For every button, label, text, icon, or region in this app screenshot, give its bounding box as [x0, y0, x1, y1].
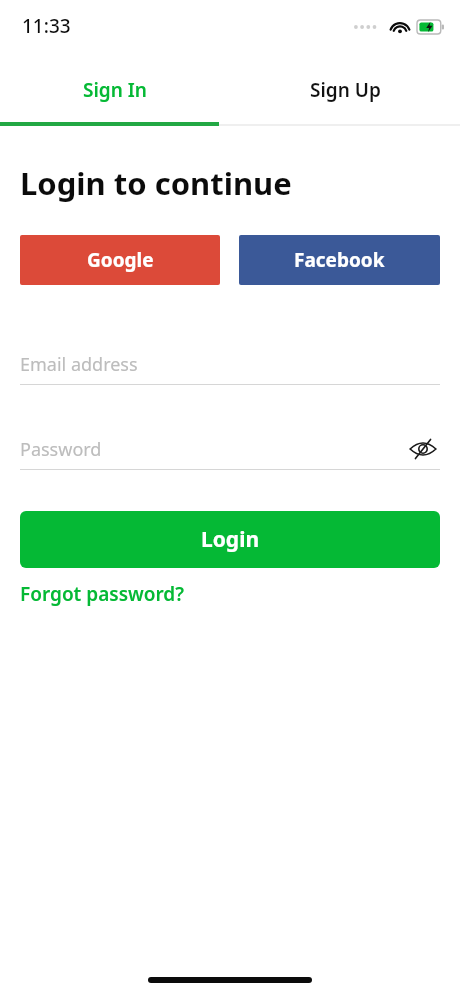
staticText: Forgot password?: [20, 581, 185, 607]
button[interactable]: Sign In: [0, 58, 230, 122]
button[interactable]: Facebook: [239, 235, 440, 285]
button[interactable]: Password: [20, 437, 102, 462]
staticText: Sign Up: [310, 77, 381, 103]
button[interactable]: Email address: [20, 343, 440, 385]
staticText: Email address: [20, 352, 138, 377]
staticText: Login: [201, 525, 260, 554]
staticText: Google: [87, 247, 154, 273]
button[interactable]: Google: [20, 235, 220, 285]
staticText: Login to continue: [20, 162, 292, 204]
button[interactable]: Show password: [406, 432, 440, 466]
staticText: Sign In: [83, 77, 147, 103]
staticText: 11:33: [22, 13, 71, 39]
button[interactable]: Forgot password?: [20, 581, 185, 607]
button[interactable]: Sign Up: [230, 58, 460, 122]
staticText: Facebook: [294, 247, 385, 273]
button[interactable]: Login: [20, 511, 440, 568]
